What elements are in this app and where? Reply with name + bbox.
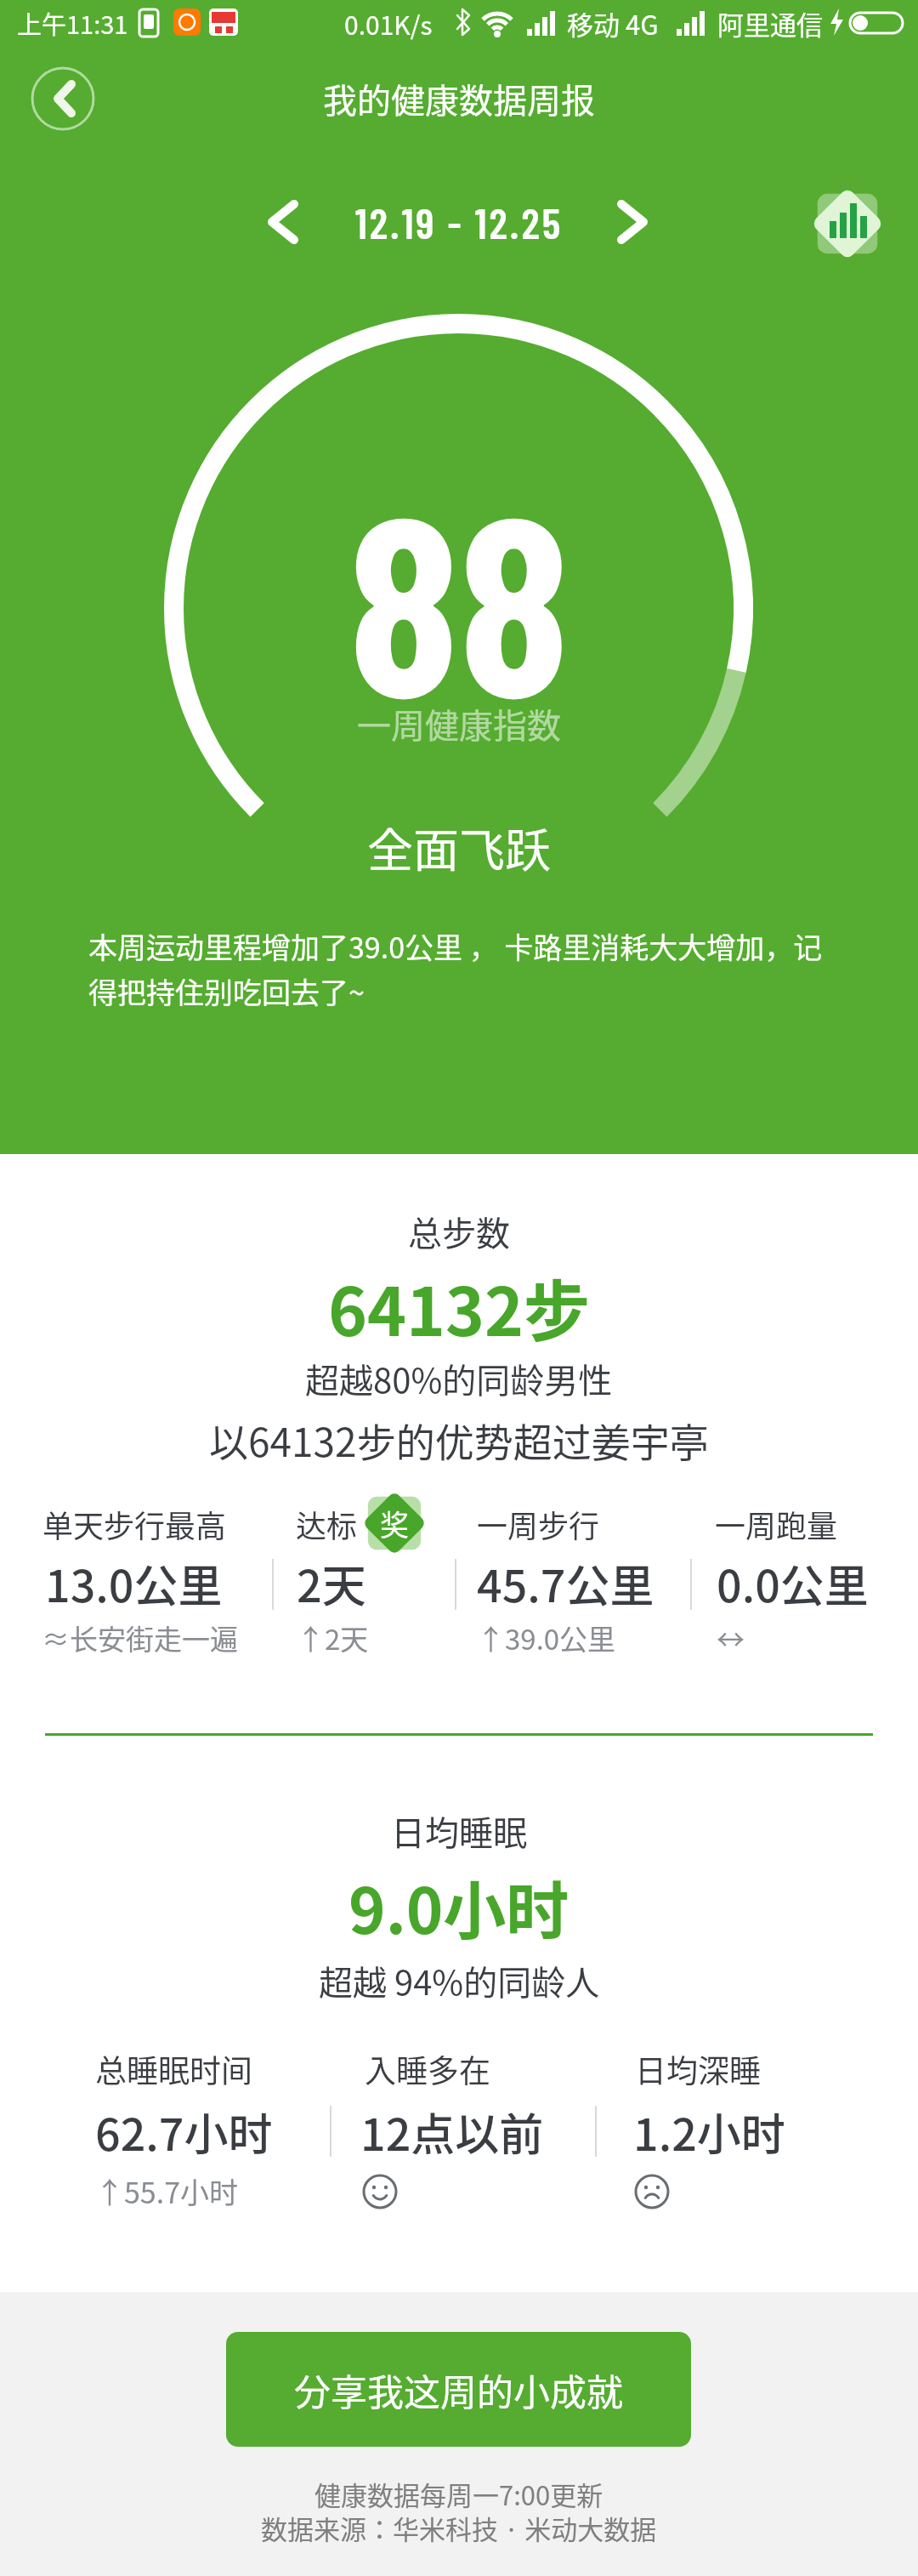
staticText: 64132步 — [328, 1260, 591, 1356]
staticText: 1.2小时 — [633, 2100, 785, 2164]
staticText: ≈长安街走一遍 — [42, 1618, 238, 1658]
staticText: 13.0公里 — [45, 1551, 223, 1615]
staticText: ↔ — [717, 1618, 745, 1658]
staticText: 本周运动里程增加了39.0公里 ， 卡路里消耗大大增加，记 — [88, 925, 823, 967]
staticText: 移动 4G — [567, 4, 659, 43]
staticText: 62.7小时 — [95, 2100, 273, 2164]
staticText: 日均睡眠 — [391, 1806, 527, 1856]
staticText: 总步数 — [408, 1207, 510, 1256]
staticText: 入睡多在 — [365, 2046, 490, 2092]
staticText: 9.0小时 — [348, 1861, 569, 1952]
staticText: 一周步行 — [477, 1502, 600, 1546]
staticText: 上午11:31 — [17, 5, 128, 41]
staticText: 奖 — [380, 1503, 409, 1544]
staticText: 12.19 - 12.25 — [355, 196, 564, 247]
staticText: 0.0公里 — [717, 1551, 869, 1615]
staticText: 88 — [348, 446, 569, 748]
staticText: 日均深睡 — [635, 2046, 761, 2092]
staticText: 以64132步的优势超过姜宇亭 — [209, 1412, 709, 1469]
button[interactable] — [604, 194, 660, 250]
button[interactable] — [255, 194, 311, 250]
staticText: 超越80%的同龄男性 — [305, 1354, 613, 1403]
staticText: 一周健康指数 — [357, 699, 561, 748]
staticText: 一周跑量 — [715, 1502, 838, 1546]
staticText: 2天 — [297, 1551, 366, 1615]
staticText: ↑39.0公里 — [477, 1618, 616, 1658]
staticText: ↑55.7小时 — [95, 2170, 239, 2212]
staticText: 阿里通信 — [717, 4, 823, 43]
staticText: 分享我这周的小成就 — [294, 2363, 623, 2416]
staticText: 总睡眠时间 — [95, 2046, 252, 2092]
staticText: 45.7公里 — [477, 1551, 654, 1615]
staticText: 0.01K/s — [344, 5, 433, 42]
staticText: 12点以前 — [360, 2100, 544, 2164]
staticText: 达标 — [296, 1502, 358, 1546]
staticText: 超越 94%的同龄人 — [319, 1956, 600, 2005]
staticText: 数据来源：华米科技 · 米动大数据 — [261, 2509, 657, 2547]
staticText: ↑2天 — [297, 1618, 369, 1658]
staticText: 全面飞跃 — [367, 814, 551, 880]
staticText: 我的健康数据周报 — [323, 74, 595, 123]
staticText: 得把持住别吃回去了~ — [88, 970, 365, 1012]
staticText: 健康数据每周一7:00更新 — [314, 2475, 603, 2513]
button[interactable]: 分享我这周的小成就 — [226, 2332, 691, 2447]
button[interactable] — [809, 185, 886, 262]
staticText: 单天步行最高 — [42, 1502, 227, 1546]
button[interactable] — [31, 66, 95, 131]
